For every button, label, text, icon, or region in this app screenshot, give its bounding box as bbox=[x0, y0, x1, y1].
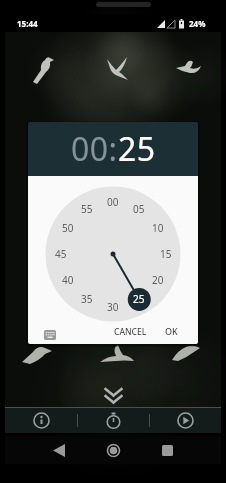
staticText: 55 bbox=[81, 202, 93, 216]
button[interactable]: 45 bbox=[50, 247, 72, 261]
staticText: 45 bbox=[55, 247, 67, 261]
staticText: 00 bbox=[107, 195, 119, 209]
button[interactable]: 20 bbox=[147, 273, 169, 287]
button[interactable] bbox=[93, 437, 133, 464]
staticText: 25 bbox=[133, 292, 145, 306]
staticText: 15 bbox=[160, 247, 172, 261]
button[interactable] bbox=[5, 407, 77, 433]
button[interactable] bbox=[78, 407, 149, 433]
button[interactable]: 40 bbox=[57, 273, 79, 287]
button[interactable] bbox=[147, 437, 187, 464]
staticText: 00: bbox=[71, 127, 118, 171]
button[interactable]: CANCEL bbox=[114, 326, 147, 338]
button[interactable] bbox=[39, 437, 79, 464]
staticText: 50 bbox=[62, 221, 74, 235]
button[interactable]: 30 bbox=[102, 300, 124, 314]
button[interactable]: 15 bbox=[155, 247, 177, 261]
button[interactable]: 55 bbox=[76, 202, 98, 216]
button[interactable]: OK bbox=[165, 325, 178, 337]
staticText: 24% bbox=[189, 18, 206, 29]
staticText: 20 bbox=[152, 273, 164, 287]
staticText: 15:44 bbox=[17, 18, 38, 29]
button[interactable]: 50 bbox=[57, 221, 79, 235]
button[interactable] bbox=[41, 327, 58, 343]
button[interactable] bbox=[103, 386, 124, 405]
button[interactable] bbox=[150, 407, 221, 433]
staticText: 10 bbox=[152, 221, 164, 235]
staticText: 40 bbox=[62, 273, 74, 287]
staticText: 05 bbox=[133, 202, 145, 216]
button[interactable]: 10 bbox=[147, 221, 169, 235]
staticText: 30 bbox=[107, 300, 119, 314]
button[interactable]: 25 bbox=[128, 292, 150, 306]
staticText: 25 bbox=[118, 127, 156, 171]
button[interactable]: 05 bbox=[128, 202, 150, 216]
button[interactable]: 35 bbox=[76, 292, 98, 306]
button[interactable]: 00 bbox=[102, 195, 124, 209]
staticText: 35 bbox=[81, 292, 93, 306]
